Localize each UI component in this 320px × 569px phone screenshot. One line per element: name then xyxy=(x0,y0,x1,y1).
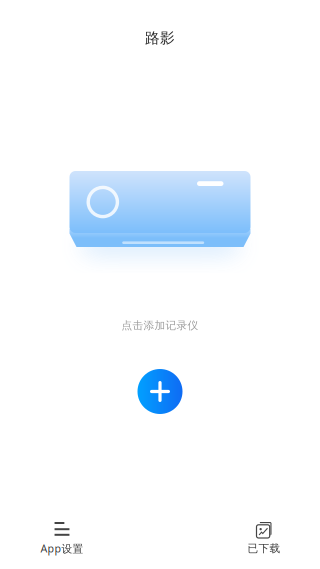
button[interactable]: 添加记录仪 xyxy=(137,369,182,414)
staticText: 已下载 xyxy=(247,542,280,555)
button[interactable]: 已下载 xyxy=(222,522,306,558)
button[interactable]: App设置 xyxy=(20,522,104,558)
staticText: 点击添加记录仪 xyxy=(121,319,198,332)
staticText: App设置 xyxy=(40,541,83,555)
staticText: 路影 xyxy=(145,29,175,47)
